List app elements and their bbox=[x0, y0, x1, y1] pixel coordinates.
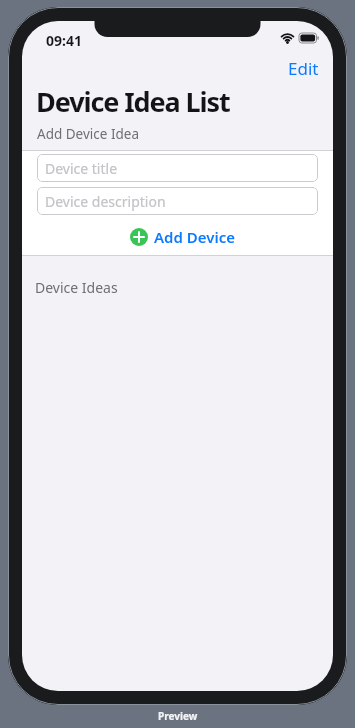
button[interactable]: Device description bbox=[37, 187, 318, 215]
staticText: Device Idea List bbox=[36, 83, 230, 120]
staticText: Add Device Idea bbox=[37, 125, 139, 143]
staticText: Device description bbox=[45, 192, 166, 211]
button[interactable]: Edit bbox=[288, 57, 319, 80]
staticText: Device title bbox=[45, 159, 118, 178]
staticText: Preview bbox=[158, 709, 198, 723]
button[interactable]: Device title bbox=[37, 154, 318, 182]
staticText: Add Device bbox=[154, 227, 235, 247]
staticText: 09:41 bbox=[46, 31, 82, 50]
staticText: Device Ideas bbox=[35, 278, 118, 297]
button[interactable]: Add Device bbox=[130, 227, 235, 247]
